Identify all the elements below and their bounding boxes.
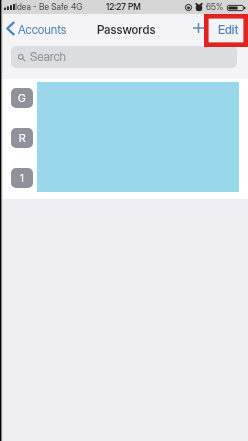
staticText: 4G bbox=[71, 2, 83, 12]
button[interactable]: Edit bbox=[213, 18, 243, 38]
staticText: 12:27 PM bbox=[106, 2, 141, 12]
staticText: 65% bbox=[206, 2, 224, 12]
button[interactable]: Add password bbox=[190, 18, 207, 38]
button[interactable]: 1 bbox=[0, 168, 248, 188]
staticText: Idea - Be Safe bbox=[15, 2, 69, 12]
button[interactable]: G bbox=[0, 88, 248, 108]
staticText: Accounts bbox=[18, 23, 67, 37]
button[interactable]: Search bbox=[11, 46, 237, 68]
staticText: Search bbox=[30, 50, 67, 64]
staticText: G bbox=[18, 92, 26, 105]
button[interactable]: R bbox=[0, 128, 248, 148]
staticText: 1 bbox=[20, 172, 24, 185]
staticText: Passwords bbox=[97, 23, 156, 37]
button[interactable]: Accounts bbox=[0, 17, 73, 39]
staticText: R bbox=[19, 132, 26, 145]
staticText: Edit bbox=[218, 23, 239, 37]
